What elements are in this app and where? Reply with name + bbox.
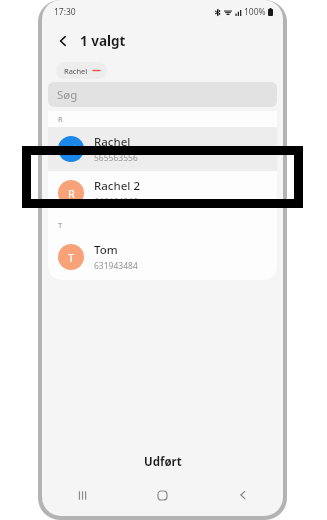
staticText: T bbox=[68, 250, 75, 265]
staticText: 1 valgt bbox=[80, 32, 126, 50]
staticText: 100% bbox=[244, 6, 266, 18]
staticText: Rachel bbox=[64, 66, 88, 76]
button[interactable]: Søg bbox=[48, 82, 277, 107]
button[interactable]: Recents bbox=[65, 480, 99, 510]
staticText: 631943484 bbox=[94, 260, 138, 272]
staticText: Rachel bbox=[94, 134, 131, 150]
button[interactable]: R bbox=[48, 171, 277, 215]
button[interactable]: Home bbox=[145, 480, 179, 510]
staticText: Rachel 2 bbox=[94, 178, 140, 194]
staticText: Søg bbox=[57, 87, 78, 103]
staticText: T bbox=[58, 220, 63, 230]
staticText: Tom bbox=[94, 242, 118, 258]
button[interactable]: T bbox=[48, 235, 277, 279]
staticText: R bbox=[68, 186, 75, 201]
staticText: 565563556 bbox=[94, 152, 138, 164]
staticText: R bbox=[58, 114, 63, 124]
button[interactable]: Rachel bbox=[48, 127, 277, 171]
button[interactable]: Back bbox=[52, 30, 74, 52]
staticText: 17:30 bbox=[54, 6, 76, 18]
staticText: Udført bbox=[144, 454, 182, 470]
button[interactable]: Udført bbox=[42, 444, 283, 480]
button[interactable]: Back bbox=[226, 480, 260, 510]
staticText: 646464846 bbox=[94, 196, 138, 208]
button[interactable]: Rachel bbox=[56, 62, 107, 79]
